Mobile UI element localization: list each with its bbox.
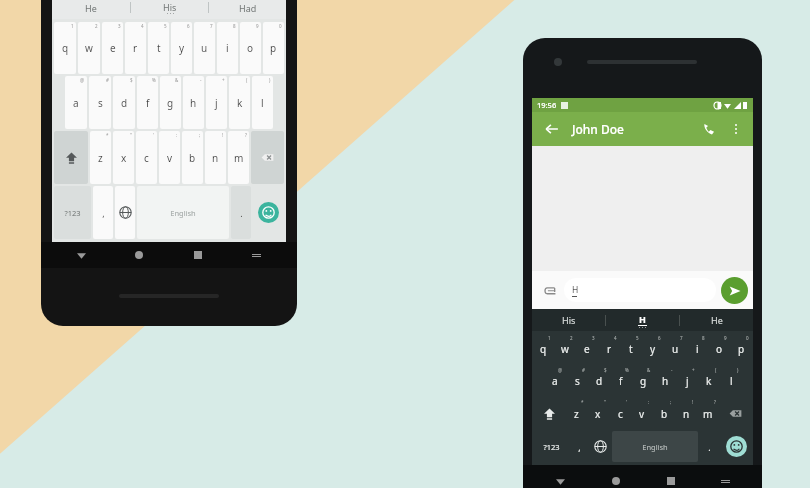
button[interactable]: 6 [171,22,192,74]
button[interactable]: ' [136,131,157,184]
button[interactable]: , [570,431,589,462]
button[interactable]: * [566,398,586,429]
button[interactable]: % [137,76,158,129]
staticText: ! [692,399,694,405]
button[interactable]: His [131,0,208,19]
button[interactable]: Had [209,0,286,19]
button[interactable]: Backspace [720,398,751,429]
button[interactable]: ? [698,398,718,429]
button[interactable]: & [160,76,181,129]
button[interactable]: $ [589,366,609,396]
button[interactable]: 9 [709,334,729,364]
staticText: a [73,96,79,110]
button[interactable]: ! [205,131,226,184]
staticText: ?123 [543,442,560,452]
button[interactable]: 1 [54,22,76,74]
button[interactable]: Emoji [726,436,747,457]
button[interactable]: ! [676,398,696,429]
button[interactable]: 4 [599,334,619,364]
button[interactable]: : [159,131,180,184]
button[interactable]: Back [52,242,110,268]
button[interactable]: 5 [621,334,641,364]
button[interactable]: ) [252,76,273,129]
button[interactable]: $ [113,76,135,129]
button[interactable]: He [52,0,130,19]
button[interactable]: 5 [148,22,169,74]
button[interactable]: @ [65,76,87,129]
button[interactable]: Recents [643,465,698,488]
button[interactable]: 0 [263,22,284,74]
button[interactable]: 4 [125,22,146,74]
staticText: n [683,407,690,421]
button[interactable]: " [588,398,608,429]
button[interactable]: Emoji [258,202,279,223]
staticText: m [234,151,244,165]
button[interactable]: Call [697,117,721,141]
button[interactable]: : [632,398,652,429]
button[interactable]: ( [229,76,250,129]
button[interactable]: . [231,186,251,239]
button[interactable]: - [183,76,204,129]
button[interactable]: 8 [687,334,707,364]
button[interactable]: 7 [194,22,215,74]
button[interactable]: 2 [555,334,575,364]
button[interactable]: 3 [577,334,597,364]
button[interactable]: 6 [643,334,663,364]
staticText: " [604,399,606,405]
button[interactable]: ( [699,366,719,396]
button[interactable]: ' [610,398,630,429]
button[interactable]: 0 [731,334,751,364]
button[interactable]: ) [721,366,741,396]
button[interactable]: Attach [539,279,561,301]
button[interactable]: ? [228,131,249,184]
button[interactable]: Backspace [251,131,284,184]
button[interactable]: H [564,278,716,302]
button[interactable]: Recents [168,242,227,268]
button[interactable]: 8 [217,22,238,74]
staticText: 0 [279,23,282,29]
button[interactable]: " [113,131,134,184]
staticText: 1 [548,335,551,341]
button[interactable]: Language [115,186,135,239]
button[interactable]: @ [544,366,565,396]
button[interactable]: % [611,366,631,396]
button[interactable]: Home [588,465,643,488]
button[interactable]: Language [591,431,610,462]
button[interactable]: More options [725,118,747,140]
button[interactable]: & [633,366,653,396]
button[interactable]: . [700,431,719,462]
button[interactable]: H [606,309,679,331]
button[interactable]: + [206,76,227,129]
button[interactable]: - [655,366,675,396]
button[interactable]: English [612,431,698,462]
button[interactable]: , [93,186,113,239]
button[interactable]: 2 [78,22,100,74]
button[interactable]: Keyboard [698,465,753,488]
button[interactable]: Keyboard [227,242,286,268]
button[interactable]: ?123 [54,186,91,239]
staticText: @ [558,367,563,373]
button[interactable]: ; [182,131,203,184]
staticText: ; [199,132,201,138]
button[interactable]: Shift [534,398,564,429]
button[interactable]: 1 [534,334,553,364]
button[interactable]: Back [541,118,563,140]
button[interactable]: 7 [665,334,685,364]
button[interactable]: Shift [54,131,88,184]
button[interactable]: # [89,76,111,129]
button[interactable]: + [677,366,697,396]
button[interactable]: ; [654,398,674,429]
staticText: g [640,374,647,388]
button[interactable]: His [532,309,605,331]
button[interactable]: Home [110,242,168,268]
button[interactable]: Back [532,465,588,488]
button[interactable]: ?123 [534,431,568,462]
staticText: ( [246,77,248,83]
button[interactable]: * [90,131,111,184]
button[interactable]: He [680,309,753,331]
button[interactable]: 3 [102,22,123,74]
button[interactable]: # [567,366,587,396]
button[interactable]: 9 [240,22,261,74]
button[interactable]: English [137,186,229,239]
button[interactable]: Send [721,277,748,304]
